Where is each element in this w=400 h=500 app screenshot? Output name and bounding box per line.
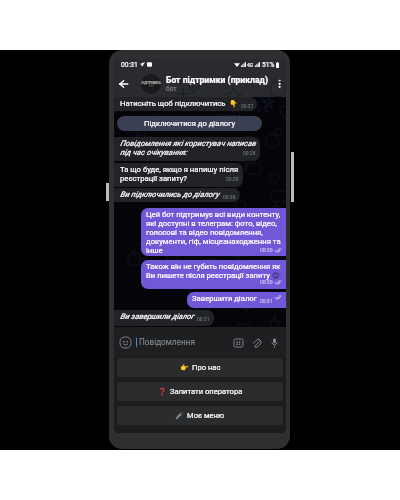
staticText: 51%	[262, 61, 275, 69]
staticText: 👇	[229, 100, 238, 108]
button[interactable]: Keyboard	[232, 336, 245, 349]
staticText: Ви пишете після реєстрації запиту	[146, 271, 270, 280]
staticText: Завершити діалог	[192, 294, 257, 303]
staticText: 00:28	[226, 176, 239, 182]
staticText: Підключитися до діалогу	[144, 119, 236, 128]
staticText: 4G	[247, 62, 254, 68]
staticText: ПІДТРИМКА	[141, 81, 161, 85]
staticText: Ви підключились до діалогу	[120, 190, 219, 199]
staticText: голосові та відео повідомлення,	[146, 228, 263, 237]
staticText: 👉	[180, 364, 189, 372]
staticText: 00:31	[121, 61, 138, 69]
staticText: БОТ	[149, 85, 154, 88]
button[interactable]: ❓	[117, 382, 283, 401]
staticText: 00:28	[243, 150, 256, 156]
button[interactable]: Підключитися до діалогу	[117, 116, 262, 131]
staticText: Повідомлення які користувач написав	[120, 139, 256, 148]
staticText: 00:31	[197, 316, 210, 322]
staticText: реєстрації запиту?	[120, 174, 187, 183]
staticText: інше	[146, 246, 163, 254]
staticText: бот	[166, 85, 177, 93]
button[interactable]: More options	[272, 70, 286, 97]
staticText: документи, гіф, місцезнаходження та	[146, 237, 281, 246]
staticText: Ви завершили діалог	[120, 312, 194, 321]
staticText: Також він не губить повідомлення які	[146, 262, 281, 271]
staticText: 🗡	[175, 412, 184, 420]
button[interactable]: Attach	[250, 336, 263, 349]
staticText: 00:28	[223, 194, 236, 200]
staticText: Повідомлення	[139, 337, 195, 347]
staticText: Натисніть щоб підключитись	[120, 99, 226, 108]
staticText: під час очікування:	[120, 148, 187, 157]
staticText: Та що буде, якщо я напишу після	[120, 165, 239, 174]
staticText: 00:31	[260, 298, 273, 304]
staticText: 00:27	[241, 103, 253, 109]
staticText: Цей бот підтримує всі види контенту,	[146, 210, 281, 219]
button[interactable]: 👉	[117, 358, 283, 377]
staticText: 00:30	[260, 279, 273, 285]
button[interactable]: Back	[114, 70, 132, 97]
staticText: Бот підтримки (приклад)	[166, 75, 269, 85]
staticText: які доступні в телеграм: фото, відео,	[146, 219, 277, 228]
staticText: 00:30	[260, 247, 273, 253]
button[interactable]: 🗡	[117, 406, 283, 425]
staticText: Запитати оператора	[170, 387, 243, 396]
button[interactable]: Voice message	[268, 336, 281, 349]
button[interactable]: Emoji	[118, 335, 132, 349]
staticText: ❓	[158, 388, 167, 396]
staticText: Моє меню	[187, 411, 225, 420]
staticText: 😊	[272, 272, 280, 280]
staticText: Про нас	[192, 363, 221, 372]
